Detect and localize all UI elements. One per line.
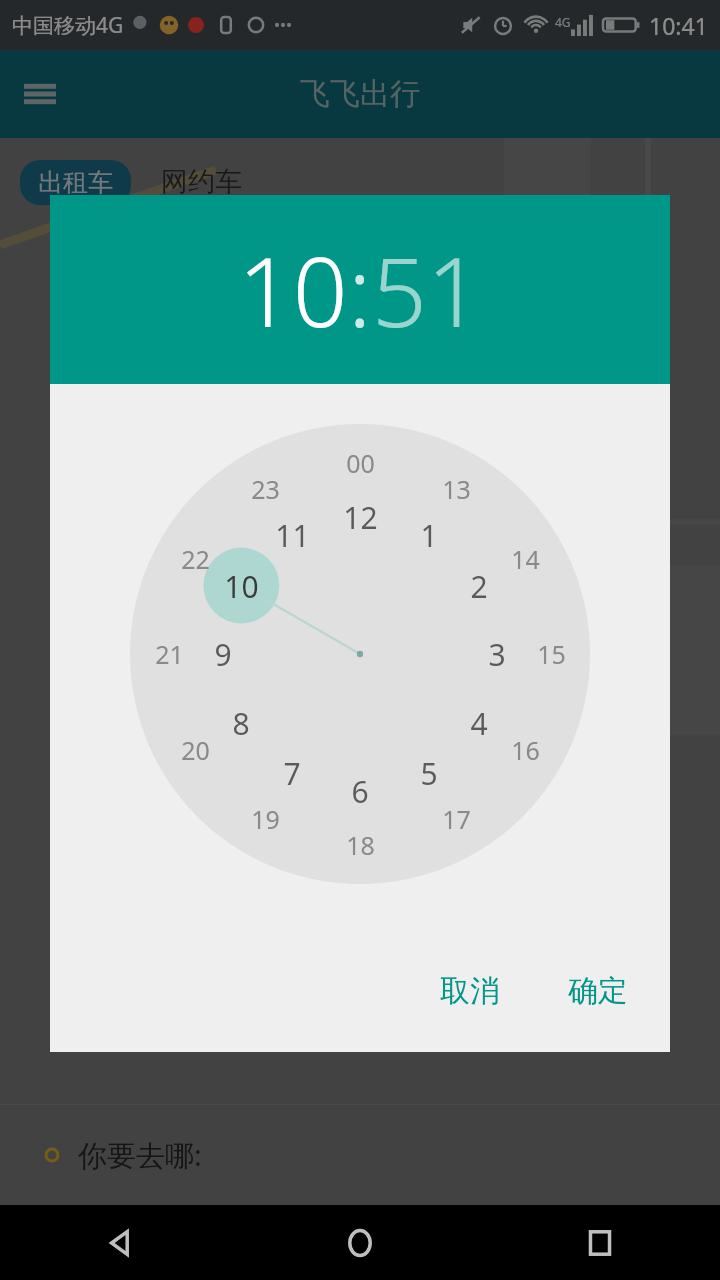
button[interactable]: 确定 [546,960,650,1022]
button[interactable]: 网约车 [155,158,248,206]
staticText: 2 [470,566,488,607]
staticText: 18 [346,828,375,862]
staticText: 确定 [568,972,628,1010]
staticText: 你要去哪: [78,1135,202,1175]
staticText: 7 [283,753,301,794]
staticText: 4 [470,703,488,744]
staticText: 飞飞出行 [300,75,420,113]
button[interactable]: 10 [50,195,670,384]
staticText: 16 [511,733,540,767]
staticText: 10 [224,566,259,607]
staticText: 00 [346,446,375,480]
button[interactable]: Recents [480,1205,720,1280]
staticText: 23 [251,472,280,506]
button[interactable]: 你要去哪: [0,1105,720,1205]
staticText: 1 [420,515,438,556]
staticText: 15 [537,637,566,671]
button[interactable]: 取消 [418,960,522,1022]
staticText: ••• [274,14,293,36]
staticText: 4G [555,14,571,30]
staticText: 12 [343,497,378,538]
staticText: 5 [420,753,438,794]
staticText: 11 [275,515,310,556]
staticText: 取消 [440,972,500,1010]
staticText: 20 [181,733,210,767]
staticText: 中国移动4G [12,11,124,40]
staticText: 19 [251,802,280,836]
button[interactable]: Home [240,1205,480,1280]
staticText: 14 [511,542,540,576]
staticText: 21 [155,637,184,671]
staticText: 10 [238,224,348,355]
staticText: 网约车 [161,165,242,199]
staticText: : [348,224,372,355]
button[interactable]: Menu [16,70,64,118]
staticText: 9 [214,634,232,675]
staticText: 10:41 [649,10,708,41]
button[interactable]: Back [0,1205,240,1280]
staticText: 17 [442,802,471,836]
staticText: 8 [232,703,250,744]
staticText: 13 [442,472,471,506]
staticText: 51 [372,224,482,355]
staticText: 6 [351,771,369,812]
staticText: 3 [488,634,506,675]
staticText: 出租车 [38,167,113,198]
button[interactable]: 出租车 [20,160,131,205]
staticText: 22 [181,542,210,576]
